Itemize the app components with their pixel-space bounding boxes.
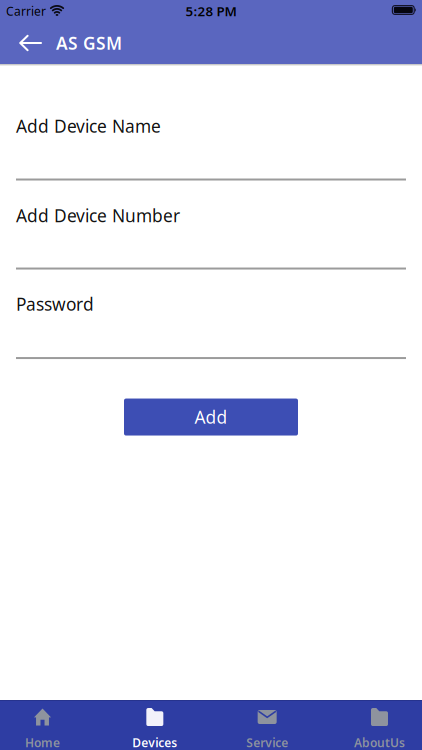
button[interactable]: AboutUs bbox=[337, 701, 422, 750]
staticText: Add bbox=[194, 405, 227, 428]
button[interactable]: Password bbox=[0, 292, 422, 359]
button[interactable]: Devices bbox=[112, 701, 197, 750]
button[interactable]: Add Device Name bbox=[0, 114, 422, 180]
staticText: Add Device Name bbox=[16, 114, 161, 137]
staticText: AS GSM bbox=[56, 31, 122, 54]
staticText: Devices bbox=[132, 734, 177, 750]
button[interactable]: Service bbox=[225, 701, 310, 750]
button[interactable]: Home bbox=[0, 701, 85, 750]
staticText: Add Device Number bbox=[16, 204, 180, 227]
staticText: Password bbox=[16, 292, 94, 315]
button[interactable]: Add bbox=[124, 399, 298, 436]
button[interactable]: Add Device Number bbox=[0, 204, 422, 269]
staticText: 5:28 PM bbox=[185, 2, 236, 20]
staticText: AboutUs bbox=[354, 734, 405, 750]
staticText: Home bbox=[25, 734, 60, 750]
button[interactable]: Back bbox=[0, 34, 42, 51]
staticText: Service bbox=[246, 734, 288, 750]
staticText: Carrier bbox=[6, 3, 46, 19]
